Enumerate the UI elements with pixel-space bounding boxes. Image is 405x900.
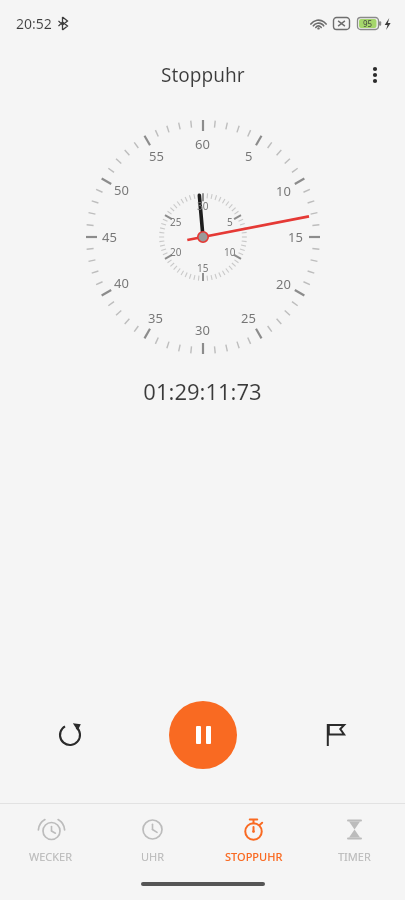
staticText: 30 <box>195 321 210 339</box>
button[interactable]: UHR <box>102 804 203 876</box>
staticText: 55 <box>149 147 164 165</box>
staticText: 01:29:11:73 <box>143 376 262 406</box>
staticText: 95 <box>363 18 373 29</box>
staticText: 15 <box>288 228 303 246</box>
staticText: 25 <box>241 309 256 327</box>
staticText: 10 <box>276 182 291 200</box>
staticText: 5 <box>245 147 253 165</box>
staticText: 35 <box>148 309 163 327</box>
staticText: TIMER <box>338 849 371 864</box>
staticText: 20 <box>276 275 291 293</box>
staticText: STOPPUHR <box>225 849 283 864</box>
staticText: UHR <box>141 849 165 864</box>
button[interactable]: WECKER <box>0 804 102 876</box>
staticText: 20:52 <box>16 14 52 33</box>
staticText: 25 <box>170 215 182 229</box>
staticText: 10 <box>224 245 236 259</box>
staticText: 50 <box>114 181 129 199</box>
button[interactable]: Pause <box>169 701 237 769</box>
button[interactable]: More options <box>351 51 399 99</box>
staticText: 20 <box>170 245 182 259</box>
staticText: 30 <box>197 199 209 213</box>
button[interactable]: STOPPUHR <box>203 804 304 876</box>
staticText: 45 <box>102 228 117 246</box>
staticText: Stoppuhr <box>161 62 245 88</box>
staticText: 15 <box>197 261 209 275</box>
button[interactable]: TIMER <box>304 804 405 876</box>
button[interactable]: Lap <box>309 709 361 761</box>
staticText: 40 <box>114 274 129 292</box>
staticText: 5 <box>227 215 233 229</box>
staticText: 60 <box>195 135 210 153</box>
staticText: WECKER <box>29 849 73 864</box>
button[interactable]: Reset <box>44 709 96 761</box>
